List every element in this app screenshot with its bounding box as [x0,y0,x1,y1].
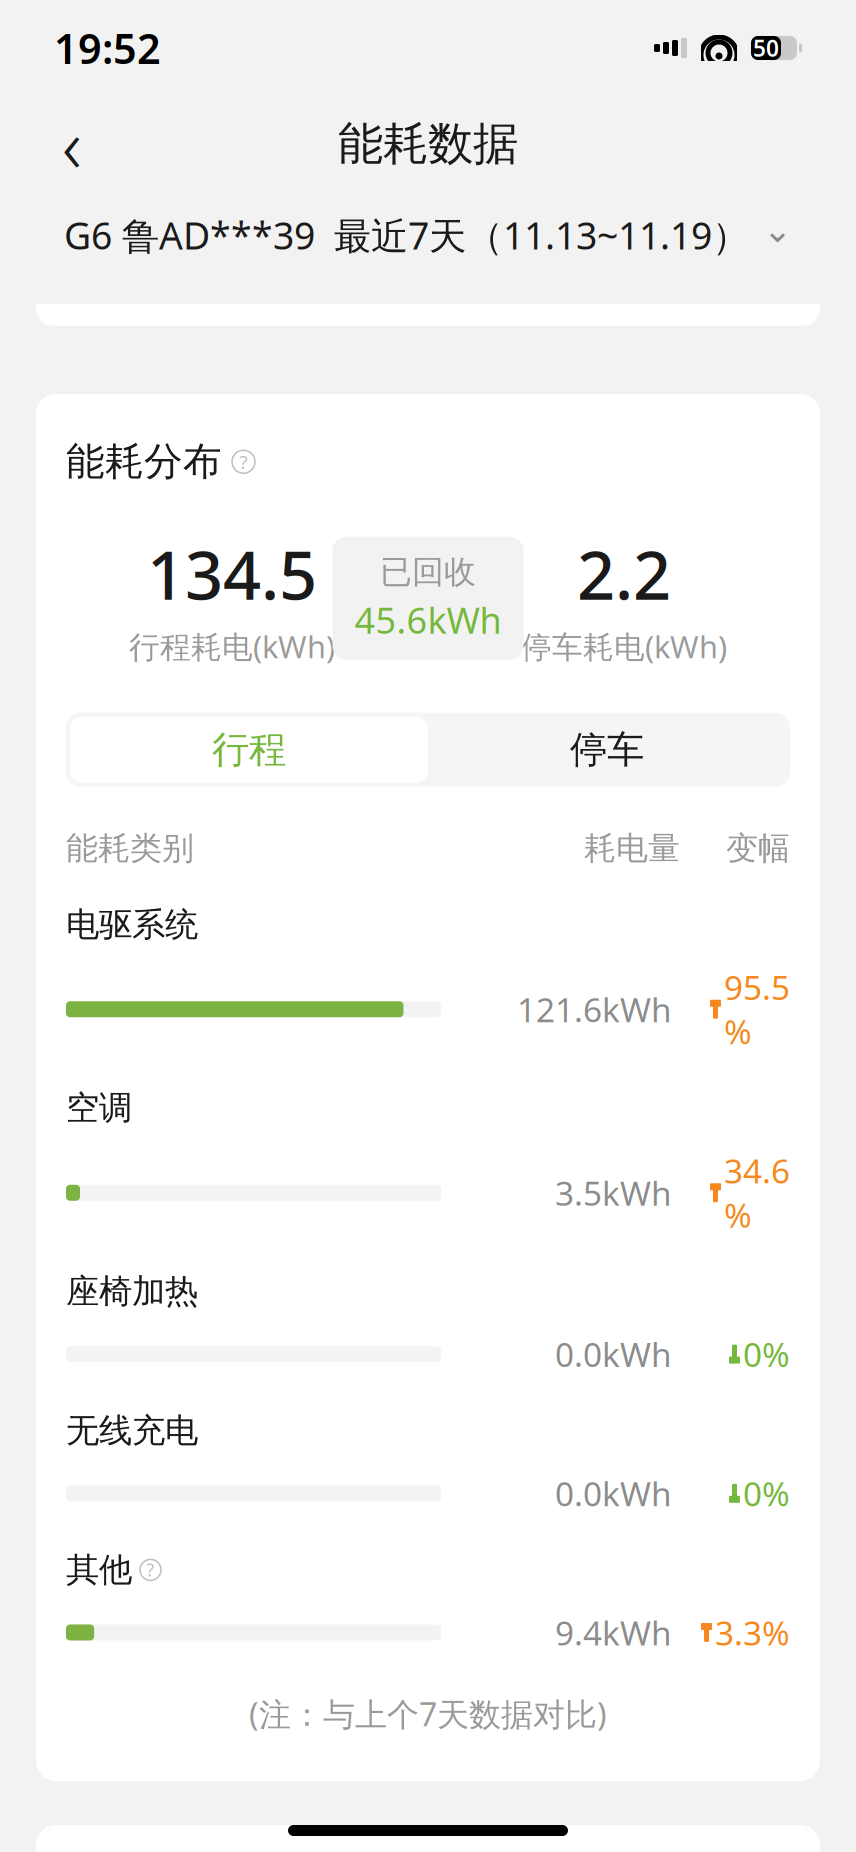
staticText: 行程 [212,727,286,773]
staticText: 停车 [570,727,644,773]
staticText: ‹ [62,94,82,194]
staticText: 电驱系统 [66,904,198,945]
staticText: 3.3% [715,1610,790,1655]
staticText: 能耗分布 [66,438,222,485]
staticText: 最近7天（11.13~11.19） [334,210,749,260]
staticText: 2.2 [577,529,671,618]
staticText: 50 [753,33,779,63]
staticText: 行程耗电(kWh) [129,626,335,667]
staticText: 0.0kWh [555,1471,672,1515]
staticText: 能耗数据 [338,116,518,172]
staticText: 变幅 [726,829,790,868]
staticText: 3.5kWh [555,1171,672,1215]
staticText: 0% [743,1471,790,1515]
staticText: 耗电量 [584,829,680,868]
staticText: 95.5% [724,965,790,1053]
staticText: G6 鲁AD***39 [64,210,315,260]
button[interactable]: 返回 [36,108,108,180]
button[interactable]: 停车 [428,717,786,783]
staticText: (注：与上个7天数据对比) [249,1693,607,1735]
staticText: 0% [743,1332,790,1376]
button[interactable]: 最近7天（11.13~11.19） [334,210,792,260]
staticText: 9.4kWh [555,1610,672,1655]
staticText: 无线充电 [66,1410,198,1451]
staticText: 134.5 [147,529,317,618]
staticText: 已回收 [380,553,476,592]
staticText: 45.6kWh [354,596,501,644]
staticText: 0.0kWh [555,1332,672,1376]
staticText: 其他 [66,1549,132,1590]
staticText: ? [146,1558,154,1581]
staticText: 空调 [66,1087,132,1128]
staticText: 能耗类别 [66,829,194,868]
staticText: 停车耗电(kWh) [521,626,727,667]
staticText: 121.6kWh [517,987,672,1031]
staticText: ⌄ [763,210,792,250]
staticText: 座椅加热 [66,1271,198,1312]
staticText: ? [239,449,247,474]
button[interactable]: 行程 [70,717,428,783]
staticText: 19:52 [54,21,161,75]
staticText: 34.6% [724,1148,790,1237]
button[interactable]: 能耗分布说明 [232,450,255,473]
